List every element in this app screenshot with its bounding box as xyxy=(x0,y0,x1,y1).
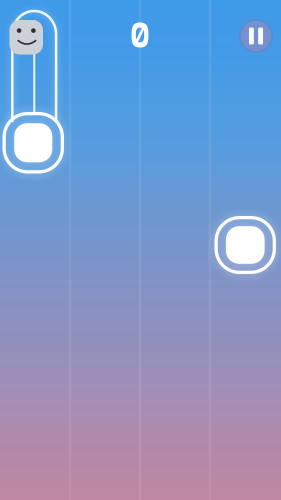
button[interactable]: Pause xyxy=(234,14,278,58)
